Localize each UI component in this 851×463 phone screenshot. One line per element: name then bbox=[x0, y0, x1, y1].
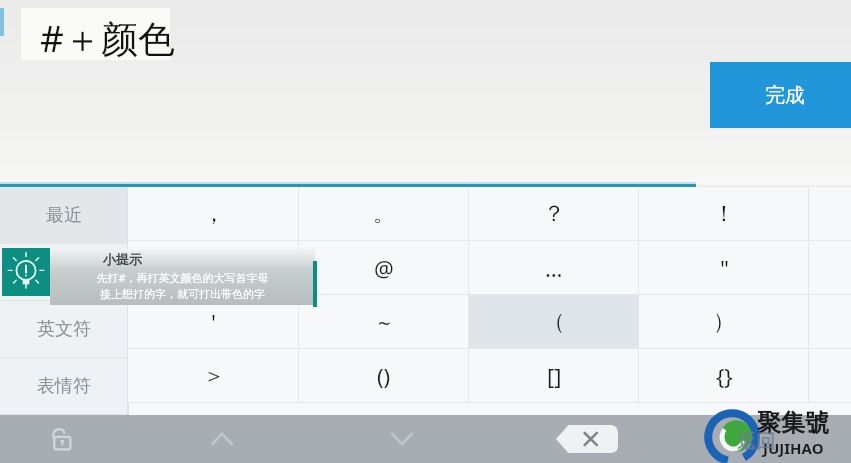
staticText: " bbox=[720, 253, 729, 283]
button[interactable]: ＞ bbox=[128, 349, 299, 403]
staticText: JUJIHAO bbox=[763, 438, 824, 458]
staticText: 、 bbox=[203, 254, 225, 282]
button[interactable]: () bbox=[299, 349, 469, 403]
staticText: ？ bbox=[543, 200, 565, 228]
staticText: … bbox=[545, 253, 563, 283]
button[interactable]: 英文符 bbox=[0, 301, 128, 358]
button[interactable]: @ bbox=[299, 241, 469, 295]
button[interactable]: ） bbox=[639, 295, 809, 349]
button[interactable]: {} bbox=[639, 349, 809, 403]
button[interactable]: Next page bbox=[372, 415, 432, 463]
staticText: 接上想打的字，就可打出带色的字 bbox=[100, 287, 265, 301]
staticText: ， bbox=[203, 200, 225, 228]
button[interactable]: 完成 bbox=[710, 62, 851, 128]
staticText: 最近 bbox=[46, 204, 82, 227]
staticText: ） bbox=[713, 308, 735, 336]
staticText: ' bbox=[211, 307, 216, 337]
button[interactable]: 表情符 bbox=[0, 358, 128, 415]
staticText: {} bbox=[716, 361, 733, 391]
staticText: 完成 bbox=[765, 83, 805, 108]
button[interactable]: 。 bbox=[299, 187, 469, 241]
staticText: ~ bbox=[378, 307, 391, 337]
button[interactable]: Backspace bbox=[556, 425, 618, 453]
staticText: 英文符 bbox=[37, 318, 91, 341]
staticText: （ bbox=[543, 308, 565, 336]
button[interactable]: [] bbox=[469, 349, 639, 403]
staticText: 聚集號 bbox=[757, 408, 829, 438]
button[interactable]: … bbox=[469, 241, 639, 295]
staticText: [] bbox=[547, 361, 562, 391]
staticText: @ bbox=[374, 253, 394, 283]
staticText: 小提示 bbox=[103, 251, 142, 267]
button[interactable]: 、 bbox=[128, 241, 299, 295]
button[interactable]: ~ bbox=[299, 295, 469, 349]
button[interactable]: 文字符 bbox=[0, 244, 128, 301]
button[interactable]: Lock keyboard bbox=[34, 415, 86, 463]
staticText: 先打#，再打英文颜色的大写首字母 bbox=[96, 270, 269, 285]
staticText: 表情符 bbox=[37, 375, 91, 398]
button[interactable]: ' bbox=[128, 295, 299, 349]
button[interactable]: ？ bbox=[469, 187, 639, 241]
staticText: 文字符 bbox=[37, 261, 91, 284]
staticText: #＋颜色 bbox=[40, 12, 175, 60]
button[interactable]: （ bbox=[469, 295, 639, 349]
button[interactable]: ， bbox=[128, 187, 299, 241]
button[interactable]: Previous page bbox=[192, 415, 252, 463]
staticText: 。 bbox=[373, 200, 395, 228]
staticText: () bbox=[377, 361, 391, 391]
staticText: ！ bbox=[713, 200, 735, 228]
other: Tip bbox=[2, 248, 50, 296]
button[interactable]: ！ bbox=[639, 187, 809, 241]
staticText: 返回 bbox=[737, 430, 775, 454]
button[interactable]: " bbox=[639, 241, 809, 295]
staticText: ＞ bbox=[203, 362, 225, 390]
button[interactable]: 最近 bbox=[0, 187, 128, 244]
